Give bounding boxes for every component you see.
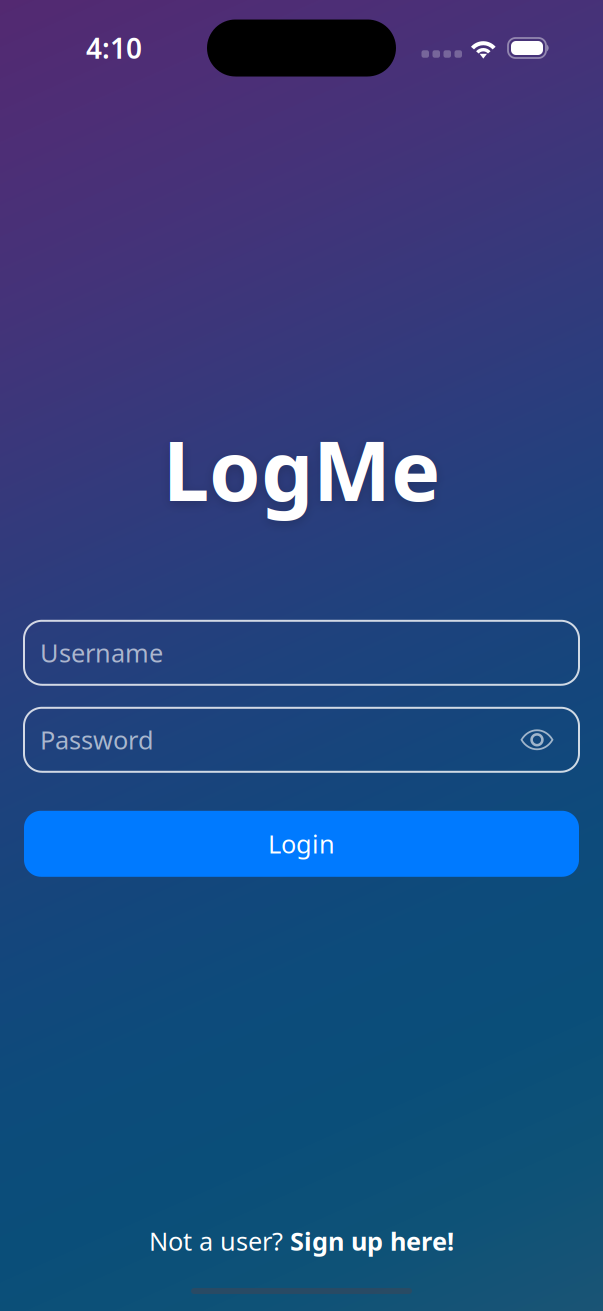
- staticText: 4:10: [86, 29, 142, 67]
- staticText: Username: [40, 636, 163, 670]
- staticText: Login: [268, 827, 335, 861]
- button[interactable]: Not a user?: [0, 1224, 603, 1258]
- button[interactable]: Login: [24, 811, 579, 877]
- staticText: Sign up here!: [290, 1224, 454, 1258]
- staticText: Password: [40, 723, 154, 757]
- button[interactable]: Username: [24, 621, 579, 685]
- staticText: Not a user?: [149, 1224, 290, 1258]
- button[interactable]: Password: [24, 708, 579, 772]
- staticText: LogMe: [163, 414, 440, 524]
